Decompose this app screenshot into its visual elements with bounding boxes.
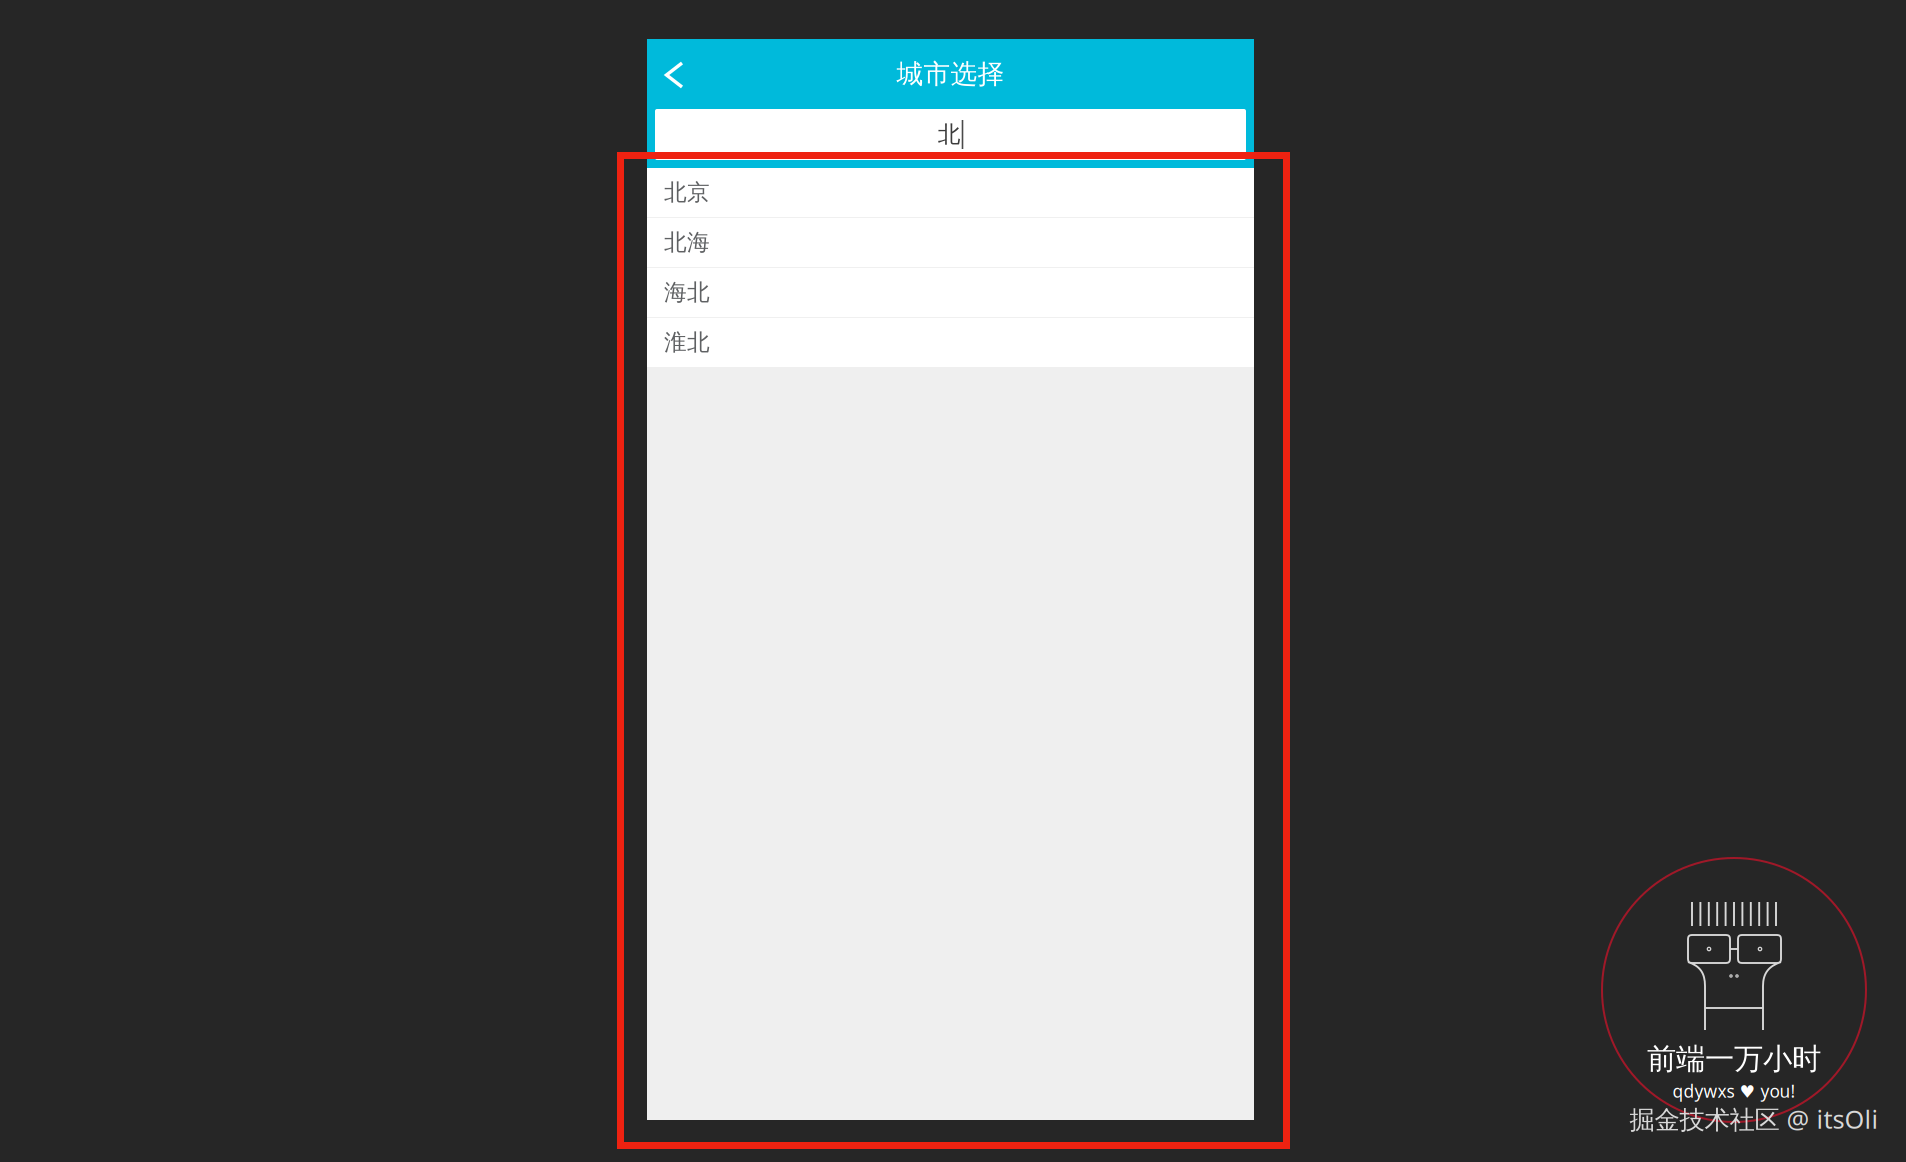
button[interactable]: 淮北 [647, 318, 1254, 367]
button[interactable]: 北京 [647, 168, 1254, 217]
staticText: 北 [938, 121, 961, 148]
button[interactable]: 北 [655, 109, 1246, 160]
staticText: qdywxs ♥ you! [1672, 1079, 1795, 1102]
button[interactable]: 北海 [647, 218, 1254, 267]
staticText: 掘金技术社区 @ itsOli [1629, 1102, 1878, 1136]
staticText: 淮北 [664, 329, 710, 356]
button[interactable]: 海北 [647, 268, 1254, 317]
staticText: 北京 [664, 179, 710, 206]
staticText: 城市选择 [896, 58, 1004, 90]
button[interactable]: Back [647, 39, 699, 109]
staticText: 前端一万小时 [1647, 1041, 1821, 1077]
staticText: 海北 [664, 279, 710, 306]
staticText: 北海 [664, 229, 710, 256]
